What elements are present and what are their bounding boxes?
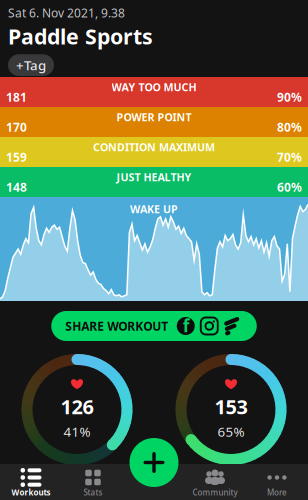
staticText: WAY TOO MUCH xyxy=(111,80,196,94)
staticText: Community xyxy=(192,487,237,498)
staticText: +Tag xyxy=(16,56,46,74)
staticText: 148 xyxy=(6,179,27,195)
staticText: 80% xyxy=(277,119,302,135)
staticText: f xyxy=(183,314,190,337)
staticText: 181 xyxy=(6,89,27,105)
staticText: JUST HEALTHY xyxy=(116,170,191,184)
staticText: 170 xyxy=(6,119,27,135)
staticText: CONDITION MAXIMUM xyxy=(93,140,215,154)
staticText: Workouts xyxy=(11,487,50,498)
staticText: SHARE WORKOUT xyxy=(65,318,168,334)
button[interactable]: SHARE WORKOUT xyxy=(51,311,257,341)
staticText: 159 xyxy=(6,149,27,165)
button[interactable]: Community xyxy=(184,464,246,500)
staticText: 90% xyxy=(277,89,302,105)
staticText: 41% xyxy=(63,423,90,440)
staticText: Paddle Sports xyxy=(8,22,153,50)
staticText: Sat 6. Nov 2021, 9.38 xyxy=(8,5,125,21)
staticText: Stats xyxy=(83,487,102,498)
button[interactable]: More xyxy=(246,464,308,500)
staticText: 70% xyxy=(277,149,302,165)
button[interactable]: Workouts xyxy=(0,464,62,500)
staticText: WAKE UP xyxy=(130,202,178,216)
button[interactable]: Add workout xyxy=(129,438,178,487)
staticText: POWER POINT xyxy=(116,110,191,124)
button[interactable]: Stats xyxy=(62,464,124,500)
staticText: 65% xyxy=(217,423,244,440)
staticText: More xyxy=(267,487,287,498)
staticText: 126 xyxy=(60,393,93,420)
button[interactable]: +Tag xyxy=(8,54,54,76)
staticText: 153 xyxy=(214,393,247,420)
staticText: 60% xyxy=(277,179,302,195)
